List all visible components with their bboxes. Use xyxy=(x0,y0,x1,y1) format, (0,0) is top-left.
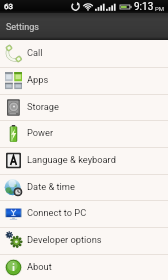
button[interactable]: Connect to PC xyxy=(0,200,168,227)
staticText: Apps xyxy=(27,74,49,85)
other: Sync xyxy=(71,1,80,12)
staticText: 9:13 xyxy=(134,1,154,13)
button[interactable]: Developer options xyxy=(0,227,168,254)
staticText: Date & time xyxy=(27,181,75,192)
button[interactable]: Date & time xyxy=(0,174,168,200)
staticText: Call xyxy=(27,47,43,58)
staticText: Language & keyboard xyxy=(27,154,116,165)
staticText: Developer options xyxy=(27,234,102,245)
staticText: Power xyxy=(27,127,54,138)
staticText: About xyxy=(27,261,52,272)
button[interactable]: Storage xyxy=(0,94,168,120)
staticText: Storage xyxy=(27,101,59,112)
staticText: PM xyxy=(155,5,165,12)
staticText: Settings xyxy=(6,22,39,33)
button[interactable]: Language & keyboard xyxy=(0,147,168,174)
button[interactable]: About xyxy=(0,254,168,280)
staticText: 63 xyxy=(4,2,13,11)
button[interactable]: Call xyxy=(0,40,168,67)
staticText: Connect to PC xyxy=(27,207,87,218)
button[interactable]: Apps xyxy=(0,67,168,94)
button[interactable]: Power xyxy=(0,120,168,147)
